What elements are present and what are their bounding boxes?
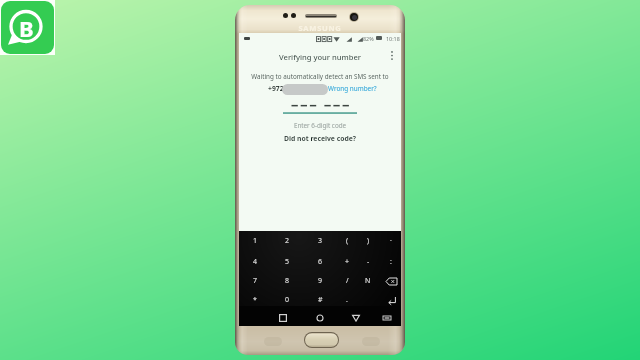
staticText: ( [346, 236, 349, 246]
staticText: Enter 6-digit code [239, 121, 401, 130]
staticText: 2 [285, 236, 290, 246]
button[interactable]: 7 [244, 272, 266, 290]
button[interactable]: 6 [309, 253, 331, 271]
button[interactable]: : [380, 253, 402, 271]
staticText: 8 [285, 276, 290, 286]
button[interactable]: · [380, 232, 402, 250]
staticText: 5 [285, 257, 290, 267]
staticText: . [346, 295, 348, 305]
button[interactable]: More options [384, 48, 399, 63]
button[interactable]: 1 [244, 232, 266, 250]
staticText: · [390, 236, 392, 246]
button[interactable]: Recents [274, 309, 292, 327]
button[interactable]: / [336, 272, 358, 290]
button[interactable]: 3 [309, 232, 331, 250]
button[interactable] [380, 272, 402, 290]
staticText: Verifying your number [239, 52, 401, 62]
staticText: 1 [253, 236, 258, 246]
button[interactable]: + [336, 253, 358, 271]
staticText: 9 [318, 276, 323, 286]
staticText: 3 [318, 236, 323, 246]
button[interactable]: Keyboard [378, 309, 396, 327]
staticText: SAMSUNG [235, 23, 405, 33]
staticText: B [19, 13, 34, 43]
staticText: ) [367, 236, 370, 246]
staticText: : [390, 257, 392, 267]
staticText: + [345, 257, 350, 267]
button[interactable]: * [244, 291, 266, 309]
button[interactable]: ) [357, 232, 379, 250]
button[interactable]: Home [305, 333, 338, 347]
staticText: 82% [363, 35, 374, 42]
staticText: 4 [253, 257, 258, 267]
staticText: Waiting to automatically detect an SMS s… [239, 72, 401, 81]
staticText: 6 [318, 257, 323, 267]
button[interactable]: # [309, 291, 331, 309]
staticText: N [365, 276, 371, 286]
button[interactable]: 5 [276, 253, 298, 271]
button[interactable]: 0 [276, 291, 298, 309]
button[interactable]: Back [347, 309, 365, 327]
button[interactable]: 8 [276, 272, 298, 290]
button[interactable]: 2 [276, 232, 298, 250]
button[interactable]: ( [336, 232, 358, 250]
staticText: / [346, 276, 349, 286]
button[interactable]: Did not receive code? [239, 134, 401, 143]
button[interactable]: Wrong number? [328, 84, 377, 93]
button[interactable]: Home [311, 309, 329, 327]
button[interactable]: - [357, 253, 379, 271]
button[interactable]: 9 [309, 272, 331, 290]
staticText: - [367, 257, 370, 267]
staticText: * [253, 295, 257, 305]
staticText: 0 [285, 295, 290, 305]
button[interactable]: WhatsApp Business [0, 0, 55, 55]
button[interactable]: . [336, 291, 358, 309]
button[interactable]: N [357, 272, 379, 290]
staticText: 7 [253, 276, 258, 286]
staticText: # [318, 295, 323, 305]
staticText: 10:18 [386, 35, 400, 42]
button[interactable]: 4 [244, 253, 266, 271]
staticText: +972 [268, 84, 284, 93]
button[interactable] [380, 291, 402, 309]
